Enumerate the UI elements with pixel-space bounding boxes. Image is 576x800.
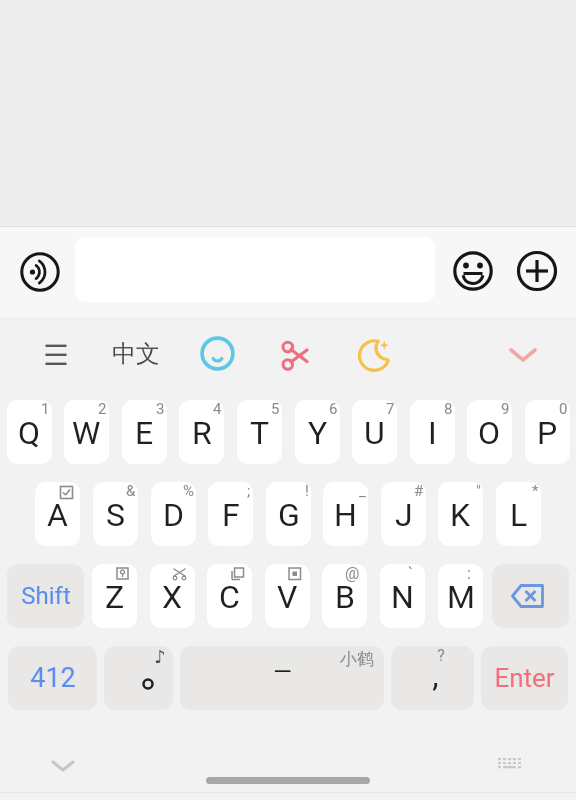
button[interactable] (20, 252, 60, 292)
button[interactable]: I (410, 400, 455, 464)
button[interactable]: Y (295, 400, 340, 464)
staticText: 小鹤 (340, 649, 374, 670)
staticText: ! (305, 482, 309, 500)
button[interactable] (272, 337, 310, 375)
button[interactable]: — (180, 646, 384, 710)
button[interactable]: 中文 (112, 339, 160, 369)
staticText: X (162, 578, 183, 616)
staticText: 6 (329, 400, 338, 418)
button[interactable]: R (179, 400, 224, 464)
button[interactable] (356, 336, 393, 373)
button[interactable] (206, 777, 370, 784)
staticText: Enter (494, 663, 555, 693)
staticText: 8 (444, 400, 453, 418)
staticText: A (47, 496, 68, 534)
staticText: H (334, 496, 357, 534)
button[interactable]: C (207, 564, 252, 628)
staticText: W (72, 414, 101, 452)
staticText: 2 (98, 400, 107, 418)
button[interactable]: N (380, 564, 425, 628)
staticText: U (364, 414, 385, 452)
staticText: Shift (21, 582, 71, 610)
button[interactable]: M (438, 564, 483, 628)
staticText: " (476, 482, 481, 500)
button[interactable]: G (266, 482, 311, 546)
staticText: ; (247, 482, 251, 500)
button[interactable]: Enter (481, 646, 568, 710)
button[interactable]: K (438, 482, 483, 546)
staticText: Y (308, 414, 328, 452)
staticText: J (395, 496, 413, 534)
staticText: P (537, 414, 558, 452)
button[interactable]: 412 (8, 646, 97, 710)
staticText: 412 (30, 662, 76, 694)
button[interactable]: D (151, 482, 196, 546)
staticText: , (432, 656, 439, 694)
button[interactable]: ? (391, 646, 474, 710)
staticText: 9 (501, 400, 510, 418)
button[interactable]: A (35, 482, 80, 546)
button[interactable]: J (381, 482, 426, 546)
staticText: 4 (213, 400, 222, 418)
staticText: S (106, 496, 125, 534)
staticText: K (450, 496, 471, 534)
button[interactable]: U (352, 400, 397, 464)
button[interactable]: Q (7, 400, 52, 464)
staticText: ` (408, 564, 413, 583)
staticText: G (278, 496, 300, 534)
staticText: — (273, 658, 292, 686)
staticText: D (163, 496, 184, 534)
staticText: L (510, 496, 528, 534)
button[interactable] (45, 344, 67, 365)
button[interactable]: S (93, 482, 138, 546)
staticText: # (414, 482, 424, 500)
staticText: 7 (386, 400, 395, 418)
staticText: @ (345, 564, 360, 583)
staticText: E (135, 414, 154, 452)
staticText: ♪ (154, 646, 166, 667)
staticText: _ (359, 482, 366, 500)
button[interactable]: X (150, 564, 195, 628)
staticText: R (192, 414, 212, 452)
staticText: Z (105, 578, 125, 616)
button[interactable] (492, 564, 569, 628)
button[interactable]: V (265, 564, 310, 628)
button[interactable]: Z (92, 564, 137, 628)
staticText: 5 (271, 400, 280, 418)
staticText: * (532, 482, 539, 500)
staticText: 1 (41, 400, 50, 418)
button[interactable]: P (525, 400, 570, 464)
staticText: T (250, 414, 270, 452)
button[interactable]: T (237, 400, 282, 464)
staticText: V (277, 578, 298, 616)
staticText: O (478, 414, 501, 452)
staticText: F (222, 496, 240, 534)
button[interactable] (50, 758, 76, 774)
button[interactable]: Shift (7, 564, 84, 628)
staticText: Q (18, 414, 41, 452)
staticText: : (467, 564, 471, 583)
staticText: N (391, 578, 414, 616)
button[interactable]: H (323, 482, 368, 546)
staticText: 0 (559, 400, 568, 418)
button[interactable]: B (322, 564, 367, 628)
button[interactable] (508, 346, 538, 364)
staticText: C (219, 578, 240, 616)
button[interactable]: L (496, 482, 541, 546)
button[interactable]: E (122, 400, 167, 464)
button[interactable]: F (208, 482, 253, 546)
button[interactable] (517, 251, 557, 291)
button[interactable] (200, 336, 236, 372)
button[interactable]: ♪ (104, 646, 173, 710)
staticText: % (183, 482, 194, 500)
staticText: I (428, 414, 437, 452)
button[interactable]: W (64, 400, 109, 464)
staticText: B (335, 578, 355, 616)
button[interactable] (496, 755, 524, 771)
staticText: M (447, 578, 475, 616)
button[interactable] (453, 251, 493, 291)
staticText: 3 (156, 400, 165, 418)
staticText: & (126, 482, 136, 500)
button[interactable]: O (467, 400, 512, 464)
